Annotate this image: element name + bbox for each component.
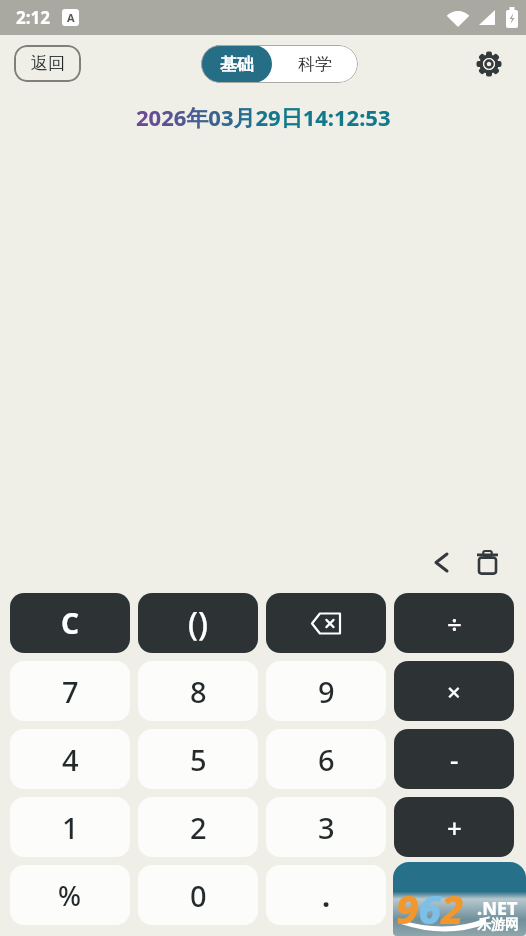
button[interactable]: 科学 [272,45,358,83]
staticText: 962 [396,881,464,935]
button[interactable]: 0 [138,865,258,925]
button[interactable]: = [394,865,514,925]
button[interactable]: 8 [138,661,258,721]
button[interactable]: 6 [266,729,386,789]
staticText: % [58,877,82,914]
staticText: = [446,876,463,915]
button[interactable]: 基础 [201,45,272,83]
staticText: - [450,742,459,777]
staticText: 0 [190,876,207,915]
staticText: C [61,604,79,642]
button[interactable]: 2 [138,797,258,857]
button[interactable] [474,549,500,575]
button[interactable]: () [138,593,258,653]
staticText: 4 [62,740,79,779]
button[interactable]: × [394,661,514,721]
button[interactable]: - [394,729,514,789]
button[interactable] [430,551,452,573]
staticText: ÷ [447,606,462,641]
staticText: 8 [190,672,207,711]
staticText: 科学 [298,54,332,75]
staticText: 6 [318,740,335,779]
button[interactable]: 7 [10,661,130,721]
staticText: 9 [318,672,335,711]
button[interactable]: 9 [266,661,386,721]
staticText: 5 [190,740,207,779]
staticText: 3 [318,808,335,847]
button[interactable]: . [266,865,386,925]
button[interactable]: C [10,593,130,653]
button[interactable]: ÷ [394,593,514,653]
staticText: A [67,10,75,25]
button[interactable]: 返回 [14,45,81,82]
button[interactable]: 4 [10,729,130,789]
staticText: 返回 [31,53,65,74]
button[interactable] [475,50,503,78]
staticText: + [447,810,462,845]
staticText: .NET [477,896,518,921]
button[interactable]: + [394,797,514,857]
staticText: 7 [62,672,79,711]
staticText: 2:12 [16,6,50,29]
button[interactable]: 5 [138,729,258,789]
button[interactable]: 3 [266,797,386,857]
button[interactable]: 1 [10,797,130,857]
staticText: () [188,601,208,645]
staticText: 2 [190,808,207,847]
button[interactable]: % [10,865,130,925]
staticText: 乐游网 [477,916,519,934]
staticText: 1 [62,808,79,847]
staticText: 基础 [220,54,254,75]
staticText: × [447,675,461,708]
staticText: 2026年03月29日14:12:53 [136,102,391,132]
staticText: . [322,876,331,915]
button[interactable] [266,593,386,653]
